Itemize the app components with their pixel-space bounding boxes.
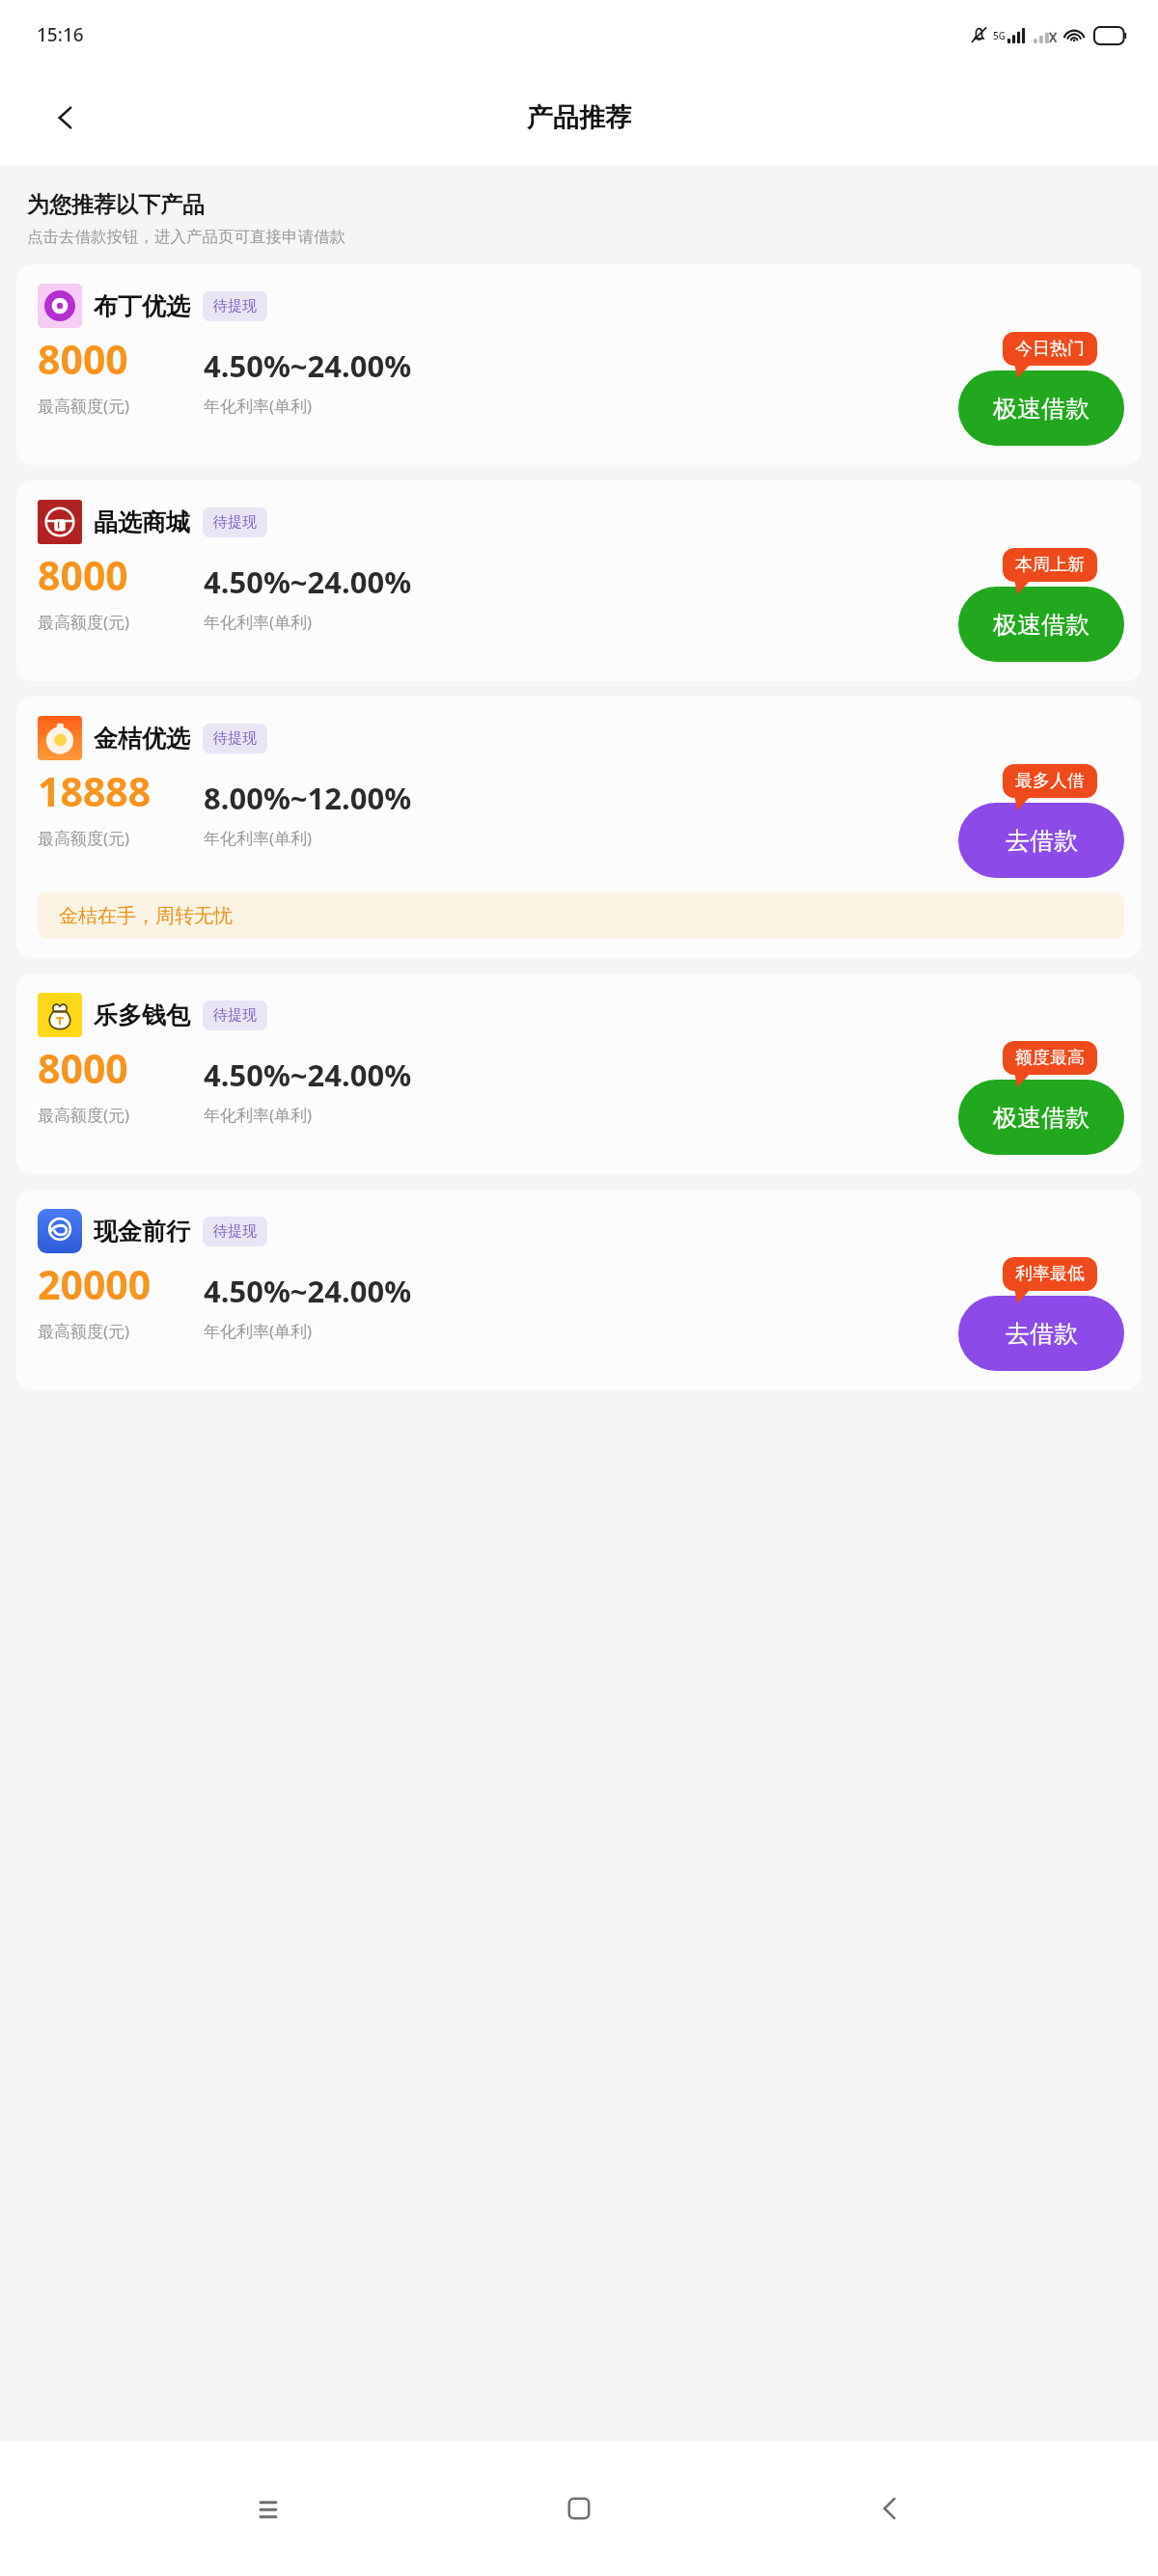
button[interactable]: 极速借款 [958, 1041, 1124, 1155]
staticText: 4.50%~24.00% [204, 1271, 412, 1311]
staticText: 待提现 [213, 1222, 257, 1241]
staticText: 最高额度(元) [38, 1104, 130, 1126]
staticText: 4.50%~24.00% [204, 345, 412, 386]
staticText: 乐多钱包 [94, 1000, 190, 1030]
staticText: 待提现 [213, 297, 257, 315]
staticText: 4.50%~24.00% [204, 1055, 412, 1095]
staticText: 4.50%~24.00% [204, 562, 412, 602]
staticText: 最高额度(元) [38, 611, 130, 633]
staticText: 最高额度(元) [38, 395, 130, 417]
staticText: 20000 [38, 1257, 152, 1311]
button[interactable]: 金桔优选 [16, 697, 1142, 958]
staticText: 布丁优选 [94, 291, 190, 321]
button[interactable]: 布丁优选 [16, 264, 1142, 465]
staticText: 本周上新 [1015, 554, 1085, 576]
staticText: 极速借款 [993, 394, 1089, 424]
staticText: 晶选商城 [94, 507, 190, 537]
staticText: 去借款 [1006, 1319, 1078, 1349]
staticText: 极速借款 [993, 1103, 1089, 1133]
button[interactable]: 晶选商城 [16, 480, 1142, 681]
staticText: 利率最低 [1015, 1263, 1085, 1285]
staticText: 年化利率(单利) [204, 1104, 313, 1126]
button[interactable]: 极速借款 [958, 548, 1124, 662]
staticText: 待提现 [213, 1006, 257, 1025]
staticText: 为您推荐以下产品 [27, 191, 205, 219]
staticText: 金桔优选 [94, 724, 190, 754]
staticText: 8000 [38, 1041, 128, 1095]
staticText: 待提现 [213, 513, 257, 532]
staticText: 最高额度(元) [38, 1320, 130, 1342]
button[interactable]: 乐多钱包 [16, 973, 1142, 1174]
staticText: 15:16 [37, 22, 84, 47]
staticText: 极速借款 [993, 610, 1089, 640]
staticText: 去借款 [1006, 826, 1078, 856]
staticText: 8.00%~12.00% [204, 778, 412, 818]
staticText: 年化利率(单利) [204, 827, 313, 849]
staticText: 年化利率(单利) [204, 1320, 313, 1342]
button[interactable]: 去借款 [958, 1257, 1124, 1371]
staticText: 18888 [38, 764, 152, 818]
staticText: 现金前行 [94, 1217, 190, 1247]
button[interactable]: Back [847, 2466, 932, 2551]
button[interactable]: 去借款 [958, 764, 1124, 878]
button[interactable]: Recents [226, 2466, 311, 2551]
staticText: 金桔在手，周转无忧 [59, 904, 233, 928]
staticText: 8000 [38, 332, 128, 386]
staticText: 8000 [38, 548, 128, 602]
button[interactable]: 极速借款 [958, 332, 1124, 446]
staticText: 待提现 [213, 729, 257, 748]
staticText: 点击去借款按钮，进入产品页可直接申请借款 [27, 227, 345, 247]
staticText: 今日热门 [1015, 338, 1085, 360]
staticText: 年化利率(单利) [204, 611, 313, 633]
button[interactable]: Home [537, 2466, 621, 2551]
staticText: 产品推荐 [527, 101, 631, 134]
button[interactable]: 现金前行 [16, 1190, 1142, 1390]
staticText: 额度最高 [1015, 1047, 1085, 1069]
staticText: 最多人借 [1015, 770, 1085, 792]
staticText: 年化利率(单利) [204, 395, 313, 417]
button[interactable]: Back [42, 95, 89, 141]
staticText: 5G [993, 29, 1006, 42]
staticText: 最高额度(元) [38, 827, 130, 849]
